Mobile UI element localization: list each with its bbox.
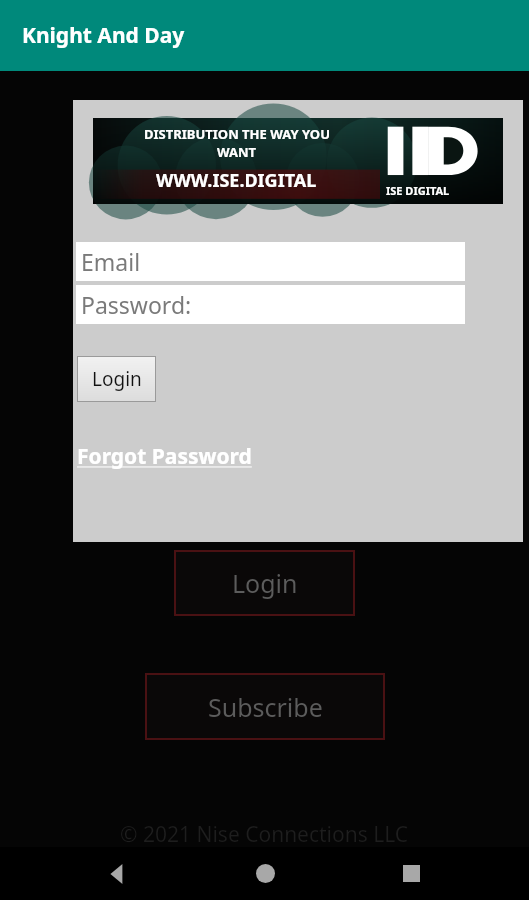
- staticText: Password:: [81, 289, 192, 320]
- staticText: Login: [92, 366, 142, 392]
- button[interactable]: Back: [90, 847, 146, 900]
- button[interactable]: Email: [76, 242, 465, 281]
- button[interactable]: Subscribe: [145, 673, 385, 740]
- button[interactable]: Password:: [76, 285, 465, 324]
- staticText: WWW.ISE.DIGITAL: [156, 168, 317, 193]
- staticText: © 2021 Nise Connections LLC: [120, 820, 409, 849]
- staticText: Subscribe: [208, 690, 323, 724]
- button[interactable]: Recent apps: [383, 847, 439, 900]
- button[interactable]: Login: [77, 356, 156, 402]
- staticText: Email: [81, 246, 141, 277]
- staticText: ISE DIGITAL: [386, 183, 450, 198]
- button[interactable]: ISE Digital advertisement: [93, 118, 503, 204]
- staticText: Forgot Password: [77, 442, 252, 471]
- staticText: Login: [232, 566, 298, 600]
- button[interactable]: Login: [174, 550, 355, 616]
- staticText: DISTRIBUTION THE WAY YOU: [144, 125, 330, 143]
- button[interactable]: Home: [237, 847, 293, 900]
- staticText: Knight And Day: [22, 21, 185, 50]
- button[interactable]: Forgot Password: [77, 442, 252, 471]
- staticText: WANT: [217, 143, 257, 161]
